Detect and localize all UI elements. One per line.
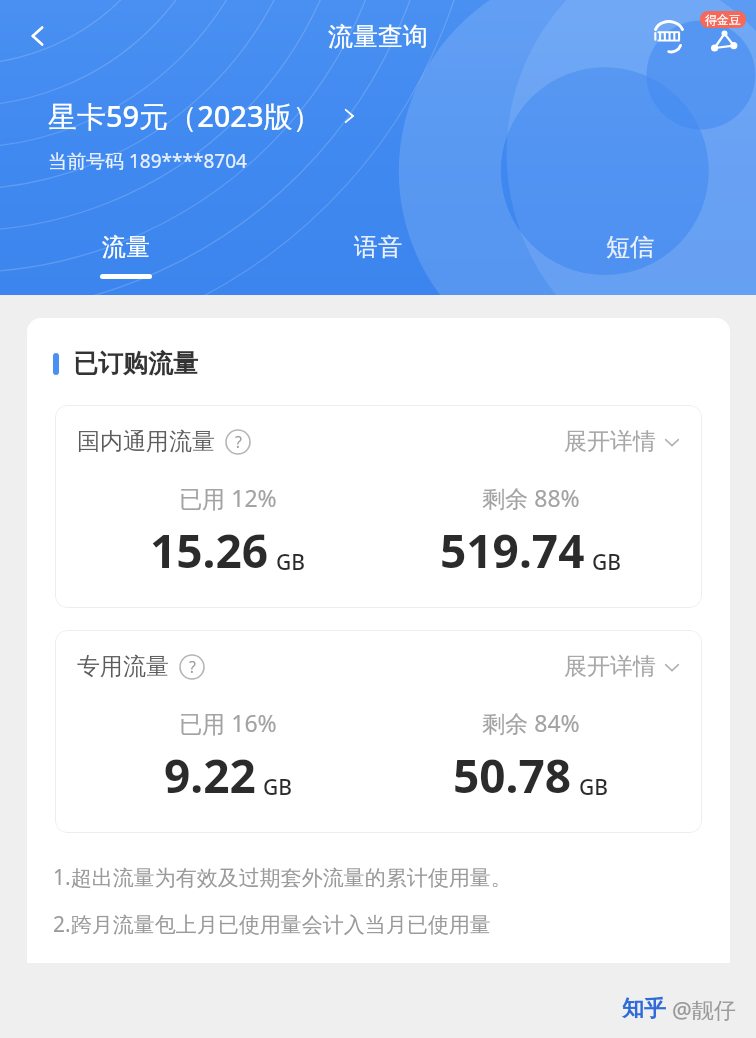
staticText: 流量 [102,232,150,262]
staticText: 流量查询 [328,21,428,52]
staticText: 已用 12% [179,482,277,513]
staticText: 15.26 [150,519,269,582]
staticText: GB [263,773,293,802]
staticText: 得金豆 [705,12,741,27]
staticText: 展开详情 [564,427,656,456]
staticText: 当前号码 189****8704 [48,148,247,174]
staticText: 国内通用流量 [77,427,215,456]
staticText: 语音 [354,232,402,262]
button[interactable]: Back [10,8,66,64]
staticText: 专用流量 [77,652,169,681]
staticText: @靓仔 [672,994,736,1024]
staticText: 9.22 [164,744,256,807]
staticText: 知乎 [622,995,666,1023]
staticText: 剩余 88% [482,482,580,513]
staticText: 剩余 84% [482,707,580,738]
button[interactable]: 流量 [0,215,252,295]
staticText: GB [592,548,622,577]
button[interactable]: 展开详情 [564,427,682,456]
button[interactable]: Help [225,429,251,455]
staticText: ? [189,656,196,678]
button[interactable]: 展开详情 [564,652,682,681]
staticText: 50.78 [453,744,572,807]
staticText: 519.74 [440,519,585,582]
staticText: 已用 16% [179,707,277,738]
staticText: 已订购流量 [73,348,198,379]
staticText: GB [276,548,306,577]
button[interactable]: 语音 [252,215,504,295]
staticText: 星卡59元（2023版） [48,96,322,136]
button[interactable]: Help [179,654,205,680]
staticText: ? [235,431,242,453]
button[interactable]: 专用流量 [55,630,702,833]
button[interactable]: 短信 [504,215,756,295]
staticText: GB [579,773,609,802]
staticText: 展开详情 [564,652,656,681]
staticText: 2.跨月流量包上月已使用量会计入当月已使用量 [53,910,491,939]
button[interactable]: Customer service 10000 [642,9,696,63]
button[interactable]: 星卡59元（2023版） [48,96,360,136]
staticText: 1.超出流量为有效及过期套外流量的累计使用量。 [53,863,512,892]
button[interactable]: 国内通用流量 [55,405,702,608]
staticText: 短信 [606,232,654,262]
button[interactable]: Share [696,9,750,63]
